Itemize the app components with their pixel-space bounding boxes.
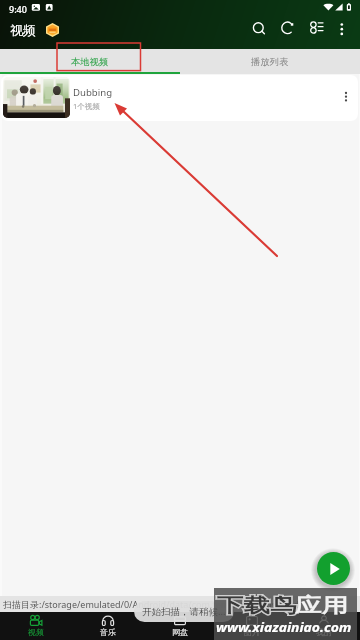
button[interactable]: 图片 <box>216 612 288 640</box>
button[interactable]: Dubbing <box>1 75 358 121</box>
button[interactable]: 播放列表 <box>180 49 360 74</box>
staticText: 下载鸟 <box>217 593 297 617</box>
staticText: 扫描目录:/storage/emulated/0/Android/data/co… <box>3 598 299 610</box>
button[interactable]: 网盘 <box>144 612 216 640</box>
button[interactable]: 我的 <box>288 612 360 640</box>
staticText: 网盘 <box>172 627 188 637</box>
staticText: 音乐 <box>100 627 116 637</box>
staticText: 下载鸟 <box>217 593 297 617</box>
staticText: 应用 <box>295 593 348 617</box>
button[interactable]: View list <box>304 16 328 40</box>
button[interactable]: More <box>337 88 355 106</box>
staticText: 视频 <box>28 627 44 637</box>
button[interactable]: 视频 <box>0 612 72 640</box>
staticText: 开始扫描，请稍候... <box>142 605 226 618</box>
staticText: 本地视频 <box>71 56 109 68</box>
button[interactable]: Refresh <box>276 16 300 40</box>
staticText: 9:40 <box>9 3 27 15</box>
button[interactable]: 音乐 <box>72 612 144 640</box>
staticText: 图片 <box>244 627 260 637</box>
button[interactable]: 本地视频 <box>0 49 180 74</box>
staticText: 我的 <box>316 627 332 637</box>
staticText: 1个视频 <box>73 101 100 111</box>
staticText: 视频 <box>10 22 36 38</box>
staticText: 播放列表 <box>251 56 289 68</box>
button[interactable]: Search <box>247 16 271 40</box>
staticText: www.xiazainiao.com <box>216 618 352 636</box>
staticText: Dubbing <box>73 86 113 99</box>
button[interactable]: More options <box>330 16 354 40</box>
button[interactable]: Play <box>317 552 350 585</box>
